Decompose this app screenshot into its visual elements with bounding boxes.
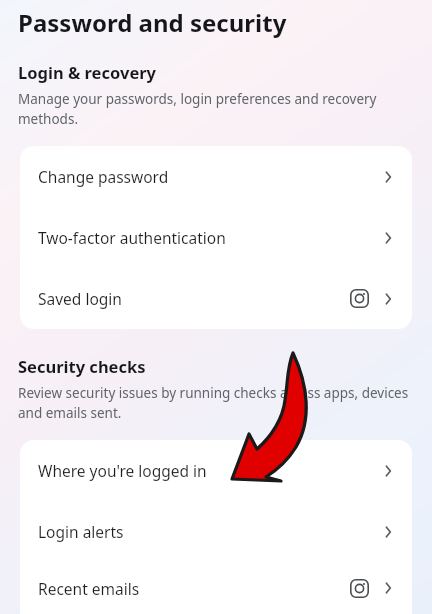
- button[interactable]: Where you're logged in: [20, 440, 412, 501]
- staticText: Recent emails: [38, 578, 140, 599]
- staticText: Password and security: [18, 6, 287, 39]
- staticText: Two-factor authentication: [38, 227, 226, 248]
- button[interactable]: Login alerts: [20, 501, 412, 562]
- staticText: Security checks: [18, 355, 146, 377]
- staticText: Saved login: [38, 288, 122, 309]
- button[interactable]: Change password: [20, 146, 412, 207]
- staticText: Where you're logged in: [38, 460, 207, 481]
- button[interactable]: Saved login: [20, 268, 412, 329]
- button[interactable]: Two-factor authentication: [20, 207, 412, 268]
- button[interactable]: Recent emails: [20, 562, 412, 614]
- staticText: Change password: [38, 166, 169, 187]
- staticText: Review security issues by running checks…: [18, 384, 410, 422]
- staticText: Login alerts: [38, 521, 124, 542]
- staticText: Login & recovery: [18, 61, 157, 83]
- staticText: Manage your passwords, login preferences…: [18, 90, 410, 128]
